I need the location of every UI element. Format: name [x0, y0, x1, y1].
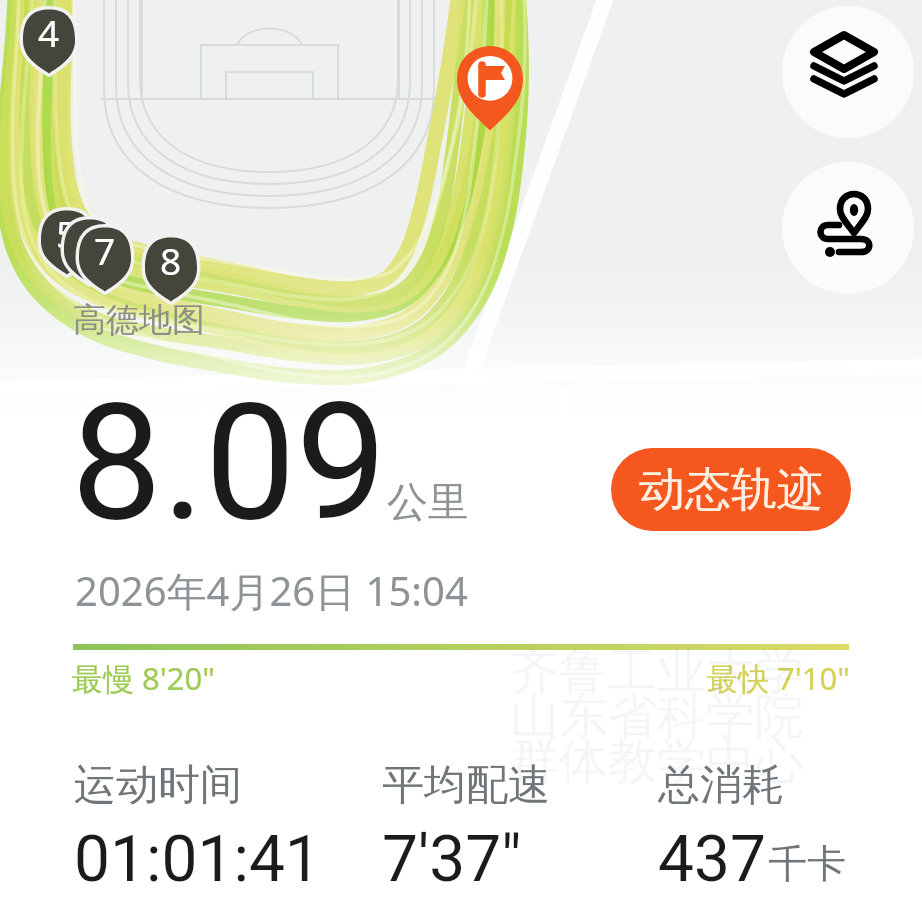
staticText: 高德地图: [73, 299, 205, 341]
staticText: 最慢 8'20": [72, 657, 215, 699]
button[interactable]: 平均配速: [382, 759, 550, 897]
staticText: 群体教学中心: [510, 731, 804, 793]
staticText: 齐鲁工业大学: [510, 641, 804, 703]
staticText: 7: [94, 225, 116, 275]
staticText: 2026年4月26日 15:04: [75, 563, 468, 618]
button[interactable]: 动态轨迹: [611, 448, 851, 531]
staticText: 总消耗: [658, 759, 784, 812]
staticText: 8.09: [71, 368, 387, 558]
staticText: 动态轨迹: [639, 461, 823, 519]
staticText: 千卡: [768, 839, 846, 888]
staticText: 437: [658, 822, 766, 897]
button[interactable]: 总消耗: [658, 759, 846, 897]
staticText: 8: [160, 235, 182, 285]
staticText: 7'37": [382, 822, 522, 897]
staticText: 公里: [387, 477, 469, 529]
staticText: 山东省科学院: [510, 686, 804, 748]
button[interactable]: Map layers: [782, 6, 914, 138]
staticText: 最快 7'10": [707, 657, 850, 699]
staticText: 运动时间: [74, 759, 242, 812]
button[interactable]: Route detail: [782, 162, 914, 294]
staticText: 6: [79, 217, 101, 267]
staticText: 4: [38, 7, 60, 57]
staticText: 平均配速: [382, 759, 550, 812]
staticText: 5: [56, 208, 78, 258]
button[interactable]: 运动时间: [74, 759, 321, 897]
staticText: 01:01:41: [74, 822, 321, 897]
